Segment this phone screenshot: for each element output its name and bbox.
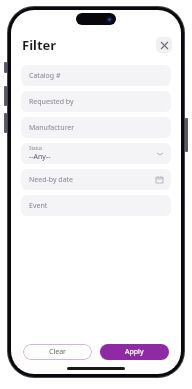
staticText: Apply [125,347,144,357]
button[interactable]: Status [21,143,171,164]
staticText: --Any-- [29,152,51,162]
staticText: Requested by [29,97,74,107]
other: Pick date [156,176,163,183]
staticText: Filter [22,36,57,54]
button[interactable]: Catalog # [21,65,171,86]
button[interactable]: Apply [100,344,169,360]
button[interactable]: Event [21,195,171,216]
staticText: Need-by date [29,175,74,185]
staticText: Catalog # [29,71,61,81]
button[interactable]: Manufacturer [21,117,171,138]
button[interactable]: Close [156,37,172,53]
staticText: Clear [49,347,66,357]
button[interactable]: Requested by [21,91,171,112]
button[interactable]: Clear [23,344,92,360]
staticText: Status [29,145,43,151]
staticText: Event [29,201,48,211]
button[interactable]: Need-by date [21,169,171,190]
staticText: Manufacturer [29,123,75,133]
